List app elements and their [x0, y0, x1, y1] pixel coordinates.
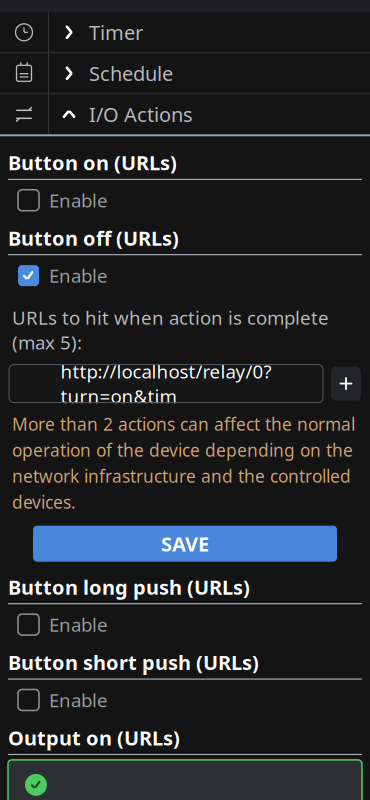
- button[interactable]: Enable: [0, 180, 370, 221]
- button[interactable]: Enable: [0, 604, 370, 645]
- staticText: Enable: [49, 188, 108, 213]
- staticText: URLs to hit when action is complete (max…: [12, 305, 329, 355]
- staticText: Schedule: [89, 60, 173, 87]
- button[interactable]: Add URL: [331, 367, 361, 401]
- staticText: SAVE: [161, 530, 209, 557]
- button[interactable]: Enable: [0, 680, 370, 720]
- staticText: Timer: [89, 19, 143, 46]
- staticText: Enable: [49, 263, 108, 288]
- staticText: More than 2 actions can affect the norma…: [12, 413, 355, 514]
- button[interactable]: Schedule: [0, 53, 370, 93]
- staticText: Button off (URLs): [8, 225, 179, 251]
- button[interactable]: SAVE: [33, 526, 337, 562]
- staticText: I/O Actions: [89, 101, 193, 128]
- staticText: Enable: [49, 612, 108, 637]
- staticText: Button long push (URLs): [8, 574, 250, 600]
- button[interactable]: Enable: [0, 255, 370, 296]
- staticText: Enable: [49, 688, 108, 712]
- staticText: Button short push (URLs): [8, 649, 259, 676]
- staticText: http://localhost/relay/0?turn=on&tim: [60, 359, 271, 408]
- staticText: Output on (URLs): [8, 724, 180, 751]
- button[interactable]: Timer: [0, 12, 370, 52]
- button[interactable]: I/O Actions: [0, 94, 370, 134]
- staticText: Button on (URLs): [8, 149, 177, 176]
